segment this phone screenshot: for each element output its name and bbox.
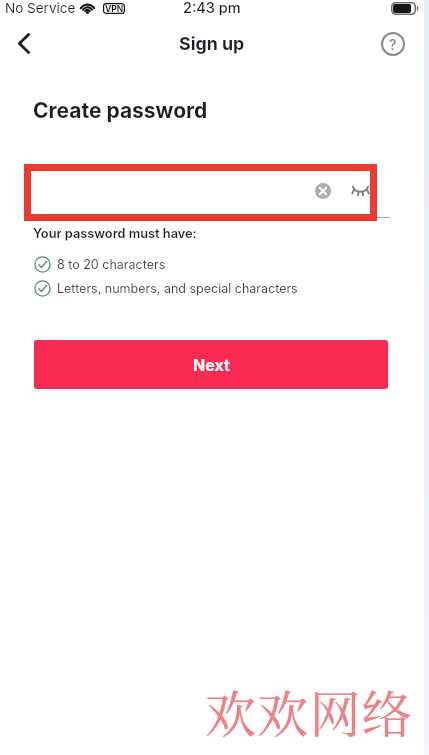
button[interactable]: Clear text (307, 175, 338, 206)
staticText: Create password (33, 98, 208, 123)
staticText: 8 to 20 characters (57, 257, 166, 272)
staticText: Your password must have: (33, 226, 197, 241)
button[interactable]: Next (34, 340, 388, 389)
staticText: 2:43 pm (183, 0, 241, 15)
button[interactable]: Help (371, 22, 415, 66)
staticText: VPN (105, 4, 124, 14)
button[interactable]: Show password (345, 176, 375, 206)
staticText: Sign up (179, 33, 245, 55)
staticText: 欢欢网络 (205, 674, 414, 747)
staticText: Letters, numbers, and special characters (57, 281, 298, 296)
button[interactable]: Back (1, 21, 46, 66)
staticText: ? (389, 36, 397, 53)
staticText: Next (193, 355, 230, 374)
staticText: No Service (5, 0, 76, 16)
